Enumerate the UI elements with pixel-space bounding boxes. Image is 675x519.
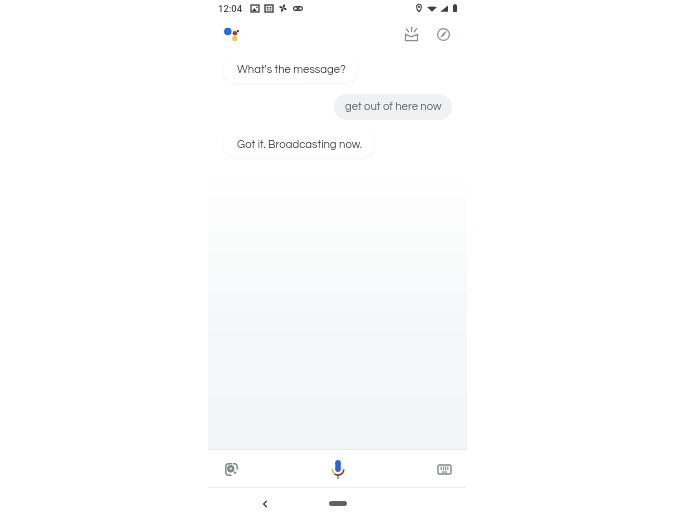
button[interactable]: Keyboard — [431, 456, 457, 482]
staticText: Got it. Broadcasting now. — [237, 139, 363, 151]
staticText: What's the message? — [237, 64, 346, 76]
button[interactable]: get out of here now — [334, 94, 452, 120]
button[interactable]: Microphone — [325, 456, 351, 482]
button[interactable]: Home — [329, 501, 347, 506]
button[interactable]: Google Assistant — [220, 20, 242, 42]
staticText: 12:04 — [218, 3, 243, 14]
button[interactable]: What's the message? — [223, 56, 358, 83]
button[interactable]: Back — [255, 494, 275, 514]
staticText: get out of here now — [345, 101, 442, 113]
button[interactable]: Got it. Broadcasting now. — [223, 131, 375, 158]
button[interactable]: Snapshot — [399, 19, 423, 43]
button[interactable]: Google Lens — [218, 456, 244, 482]
button[interactable]: Explore — [431, 19, 455, 43]
